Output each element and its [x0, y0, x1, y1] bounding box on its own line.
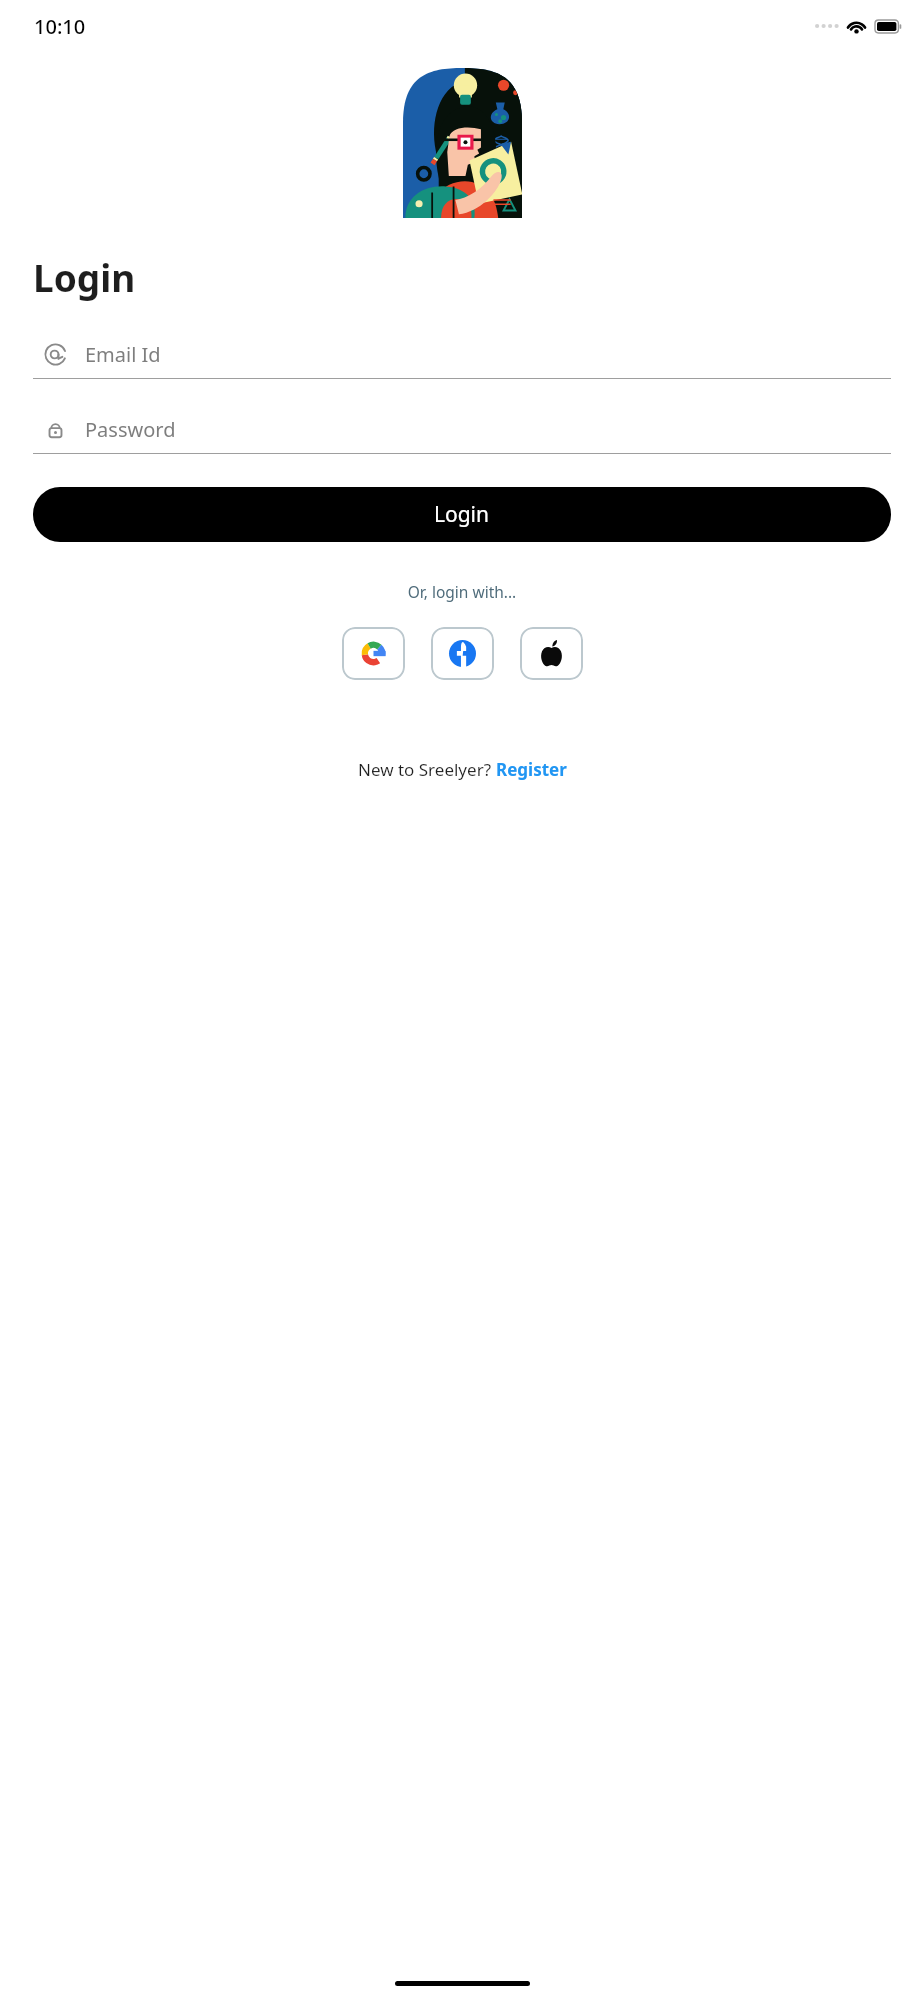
- staticText: Or, login with...: [0, 581, 924, 602]
- staticText: Email Id: [85, 341, 161, 368]
- button[interactable]: Register: [496, 758, 567, 781]
- button[interactable]: Sign in with Google: [342, 627, 405, 680]
- button[interactable]: Email Id: [33, 331, 891, 378]
- staticText: Login: [434, 500, 490, 529]
- staticText: Register: [496, 758, 567, 781]
- button[interactable]: Password: [33, 406, 891, 453]
- staticText: Login: [33, 252, 136, 302]
- staticText: 10:10: [34, 13, 86, 40]
- button[interactable]: Sign in with Facebook: [431, 627, 494, 680]
- staticText: New to Sreelyer?: [358, 758, 496, 781]
- staticText: Password: [85, 416, 176, 443]
- button[interactable]: Login: [33, 487, 891, 542]
- button[interactable]: Sign in with Apple: [520, 627, 583, 680]
